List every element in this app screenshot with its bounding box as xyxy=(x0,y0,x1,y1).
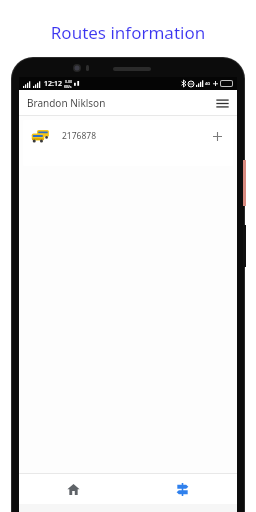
button[interactable]: Add route xyxy=(209,128,225,144)
staticText: 4G xyxy=(205,81,211,86)
staticText: 2176878 xyxy=(62,130,97,142)
staticText: KB/s xyxy=(64,84,72,89)
button[interactable]: Routes xyxy=(128,474,237,504)
button[interactable]: Home xyxy=(19,474,128,504)
staticText: 0.00 xyxy=(65,79,72,84)
staticText: 12:12 xyxy=(44,79,62,89)
button[interactable]: 2176878 xyxy=(23,120,233,166)
staticText: Brandon Niklson xyxy=(27,96,106,110)
button[interactable]: Menu xyxy=(213,94,231,112)
staticText: Routes information xyxy=(0,21,256,44)
